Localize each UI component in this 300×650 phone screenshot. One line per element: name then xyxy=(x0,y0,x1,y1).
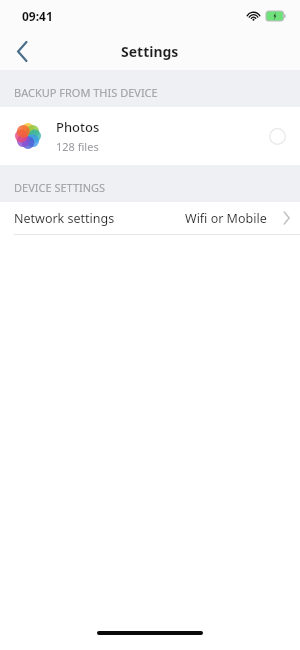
staticText: Settings xyxy=(121,42,179,61)
staticText: Wifi or Mobile xyxy=(185,210,267,227)
button[interactable]: Photos xyxy=(0,107,300,165)
staticText: DEVICE SETTINGS xyxy=(14,180,106,195)
staticText: BACKUP FROM THIS DEVICE xyxy=(14,85,158,100)
staticText: 09:41 xyxy=(22,8,53,24)
staticText: Photos xyxy=(56,118,100,136)
staticText: 128 files xyxy=(56,139,99,154)
button[interactable]: Back xyxy=(0,32,44,70)
button[interactable]: Network settings xyxy=(0,202,300,234)
staticText: Network settings xyxy=(14,210,115,227)
